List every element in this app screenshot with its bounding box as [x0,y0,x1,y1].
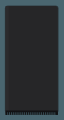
button[interactable]: Dark screen panel [0,0,64,120]
